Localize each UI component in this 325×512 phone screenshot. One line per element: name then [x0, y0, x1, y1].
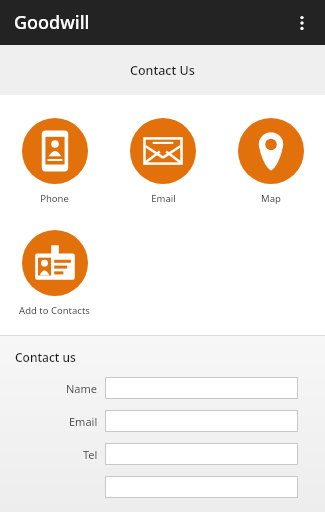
staticText: Email — [151, 192, 176, 205]
staticText: Add to Contacts — [19, 304, 90, 317]
staticText: Contact us — [15, 349, 76, 365]
staticText: Contact Us — [130, 62, 195, 79]
button[interactable]: Phone — [0, 116, 109, 207]
staticText: Email — [69, 414, 98, 429]
button[interactable]: More options — [285, 6, 319, 40]
staticText: Name — [66, 381, 98, 396]
button[interactable]: Email — [109, 116, 217, 207]
staticText: Goodwill — [14, 10, 90, 35]
staticText: Map — [261, 192, 281, 205]
button[interactable]: Map — [217, 116, 325, 207]
button[interactable]: Add to Contacts — [0, 228, 109, 319]
staticText: Phone — [40, 192, 69, 205]
staticText: Tel — [83, 447, 98, 462]
